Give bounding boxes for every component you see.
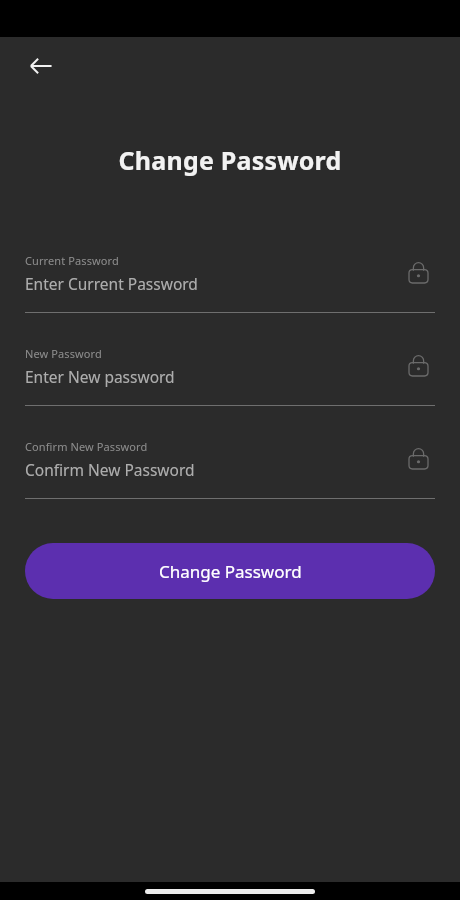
- staticText: Confirm New Password: [25, 439, 148, 454]
- staticText: Enter Current Password: [25, 273, 198, 294]
- staticText: Current Password: [25, 253, 119, 268]
- staticText: Change Password: [0, 143, 460, 177]
- staticText: Enter New password: [25, 366, 175, 387]
- button[interactable]: Back: [17, 42, 65, 90]
- button[interactable]: Change Password: [25, 543, 435, 599]
- staticText: New Password: [25, 346, 102, 361]
- button[interactable]: Toggle password visibility: [401, 440, 435, 474]
- staticText: Change Password: [159, 560, 302, 583]
- staticText: Confirm New Password: [25, 459, 195, 480]
- button[interactable]: Toggle password visibility: [401, 347, 435, 381]
- button[interactable]: Toggle password visibility: [401, 254, 435, 288]
